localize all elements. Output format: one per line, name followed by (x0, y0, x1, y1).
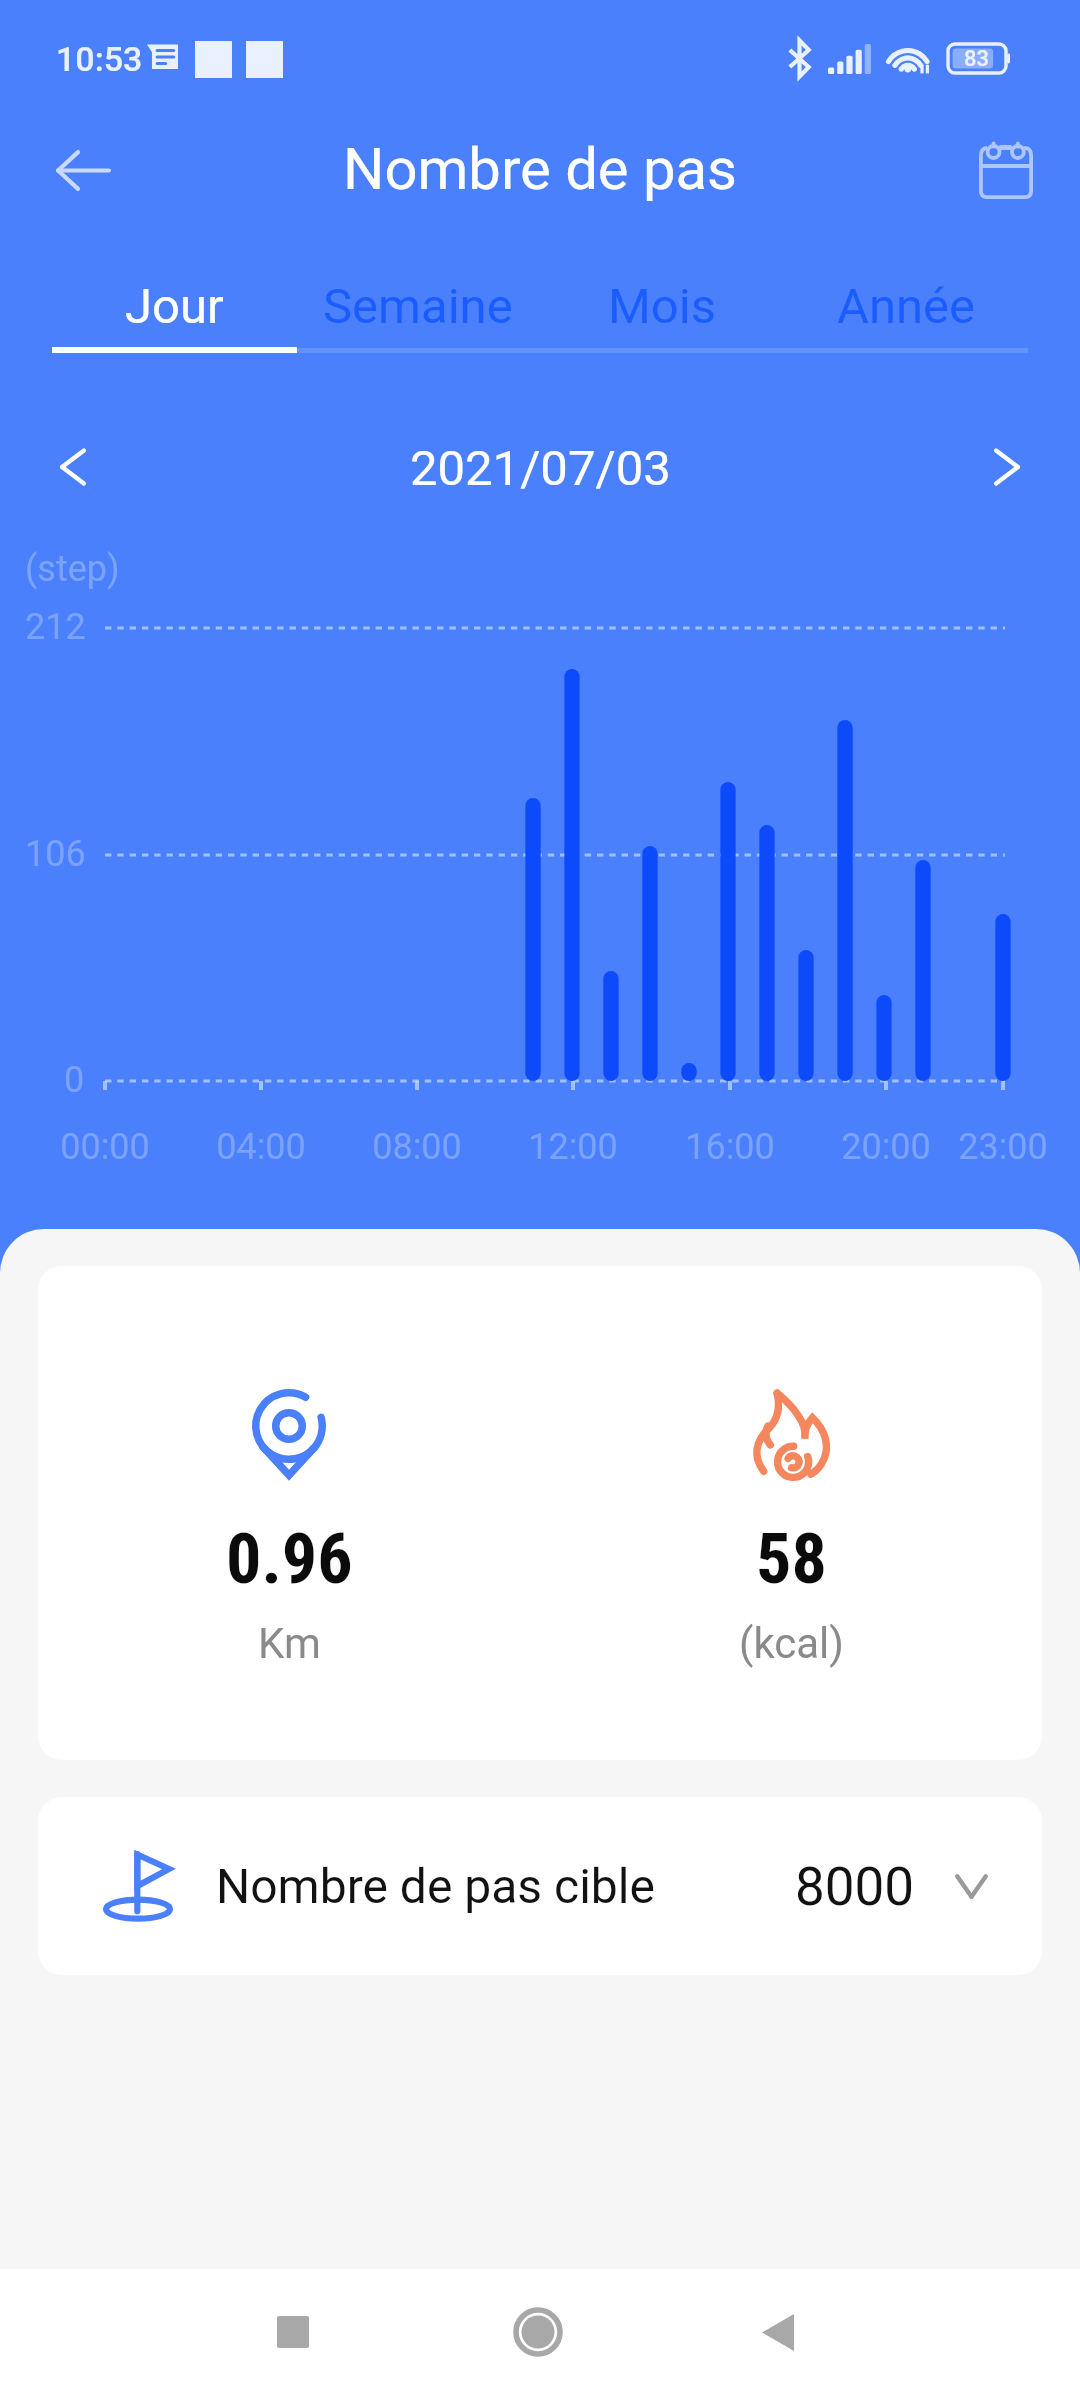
button[interactable]: Back (718, 2272, 838, 2392)
staticText: Nombre de pas (343, 135, 738, 203)
button[interactable]: Home (478, 2272, 598, 2392)
staticText: 10:53 (56, 39, 143, 79)
staticText: 106 (25, 833, 86, 875)
staticText: 212 (25, 606, 86, 648)
staticText: Semaine (323, 278, 513, 335)
staticText: 8000 (795, 1856, 915, 1918)
staticText: Mois (608, 278, 716, 335)
button[interactable]: Nombre de pas cible (38, 1797, 1042, 1975)
staticText: 2021/07/03 (410, 440, 671, 497)
staticText: (kcal) (739, 1619, 844, 1668)
staticText: 20:00 (816, 1126, 956, 1168)
staticText: (step) (25, 548, 120, 590)
staticText: 0.96 (226, 1518, 353, 1600)
button[interactable]: Semaine (296, 240, 540, 362)
staticText: Jour (125, 278, 224, 335)
button[interactable]: Next day (962, 422, 1052, 512)
staticText: 04:00 (191, 1126, 331, 1168)
staticText: 83 (964, 46, 990, 72)
button[interactable]: Calendar (954, 118, 1058, 222)
staticText: Année (837, 278, 976, 335)
button[interactable]: Previous day (28, 422, 118, 512)
staticText: 08:00 (347, 1126, 487, 1168)
button[interactable]: 0.96 (38, 1266, 1042, 1760)
button[interactable]: Change step goal (939, 1854, 1003, 1918)
staticText: 12:00 (503, 1126, 643, 1168)
button[interactable]: Année (784, 240, 1028, 362)
button[interactable]: Mois (540, 240, 784, 362)
button[interactable]: Back (28, 115, 138, 225)
staticText: Km (258, 1619, 321, 1668)
staticText: 58 (756, 1518, 827, 1600)
button[interactable]: Recent apps (233, 2272, 353, 2392)
staticText: 0 (64, 1059, 85, 1101)
staticText: Nombre de pas cible (216, 1858, 655, 1914)
button[interactable]: Jour (52, 240, 296, 362)
staticText: 16:00 (660, 1126, 800, 1168)
staticText: 00:00 (35, 1126, 175, 1168)
staticText: 23:00 (933, 1126, 1073, 1168)
